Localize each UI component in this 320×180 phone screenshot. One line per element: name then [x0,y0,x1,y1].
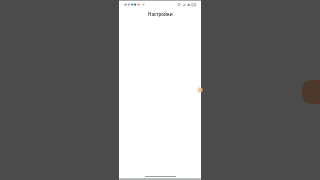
button[interactable]: Open next screen [302,80,320,104]
button[interactable]: Status bar [119,1,201,8]
button[interactable]: Accent action [193,84,204,95]
button[interactable]: Настройки [119,8,201,20]
staticText: Настройки [148,11,173,17]
